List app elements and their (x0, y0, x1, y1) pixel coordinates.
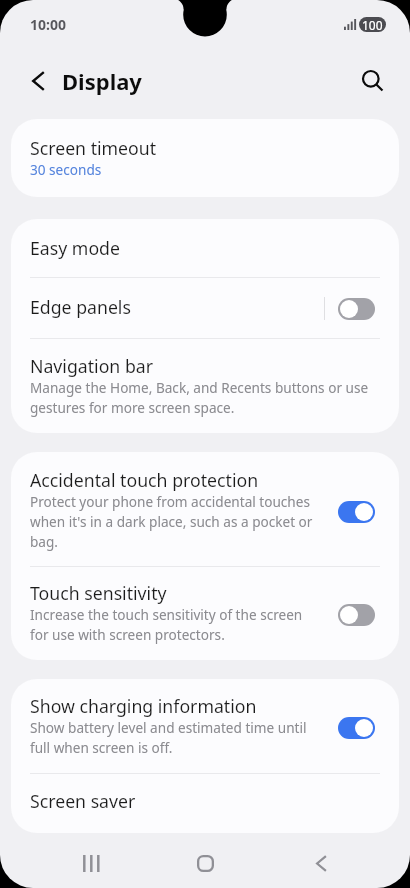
staticText: Screen timeout (30, 139, 157, 160)
staticText: Manage the Home, Back, and Recents butto… (30, 378, 380, 418)
button[interactable]: Accidental touch protection (11, 452, 399, 566)
staticText: Display (62, 66, 142, 96)
staticText: Show battery level and estimated time un… (30, 718, 318, 758)
button[interactable]: Screen timeout (11, 119, 399, 197)
staticText: Protect your phone from accidental touch… (30, 492, 318, 552)
button[interactable]: Navigate up (22, 65, 54, 97)
staticText: Screen saver (30, 792, 136, 813)
button[interactable]: Recent apps (67, 839, 115, 887)
staticText: 100 (362, 17, 383, 32)
staticText: Show charging information (30, 697, 257, 718)
staticText: Navigation bar (30, 357, 153, 378)
button[interactable]: Toggle off (338, 604, 375, 626)
staticText: Touch sensitivity (30, 584, 167, 605)
button[interactable]: Toggle on (338, 501, 375, 523)
button[interactable]: Touch sensitivity (11, 567, 399, 660)
button[interactable]: Back (297, 839, 345, 887)
button[interactable]: Toggle on (338, 717, 375, 739)
button[interactable]: Screen saver (11, 774, 399, 833)
button[interactable]: Toggle off (338, 298, 375, 320)
button[interactable]: Home (181, 839, 229, 887)
staticText: 30 seconds (30, 160, 102, 180)
button[interactable]: Easy mode (11, 219, 399, 277)
button[interactable]: Edge panels (11, 278, 399, 338)
staticText: Easy mode (30, 239, 120, 260)
staticText: Increase the touch sensitivity of the sc… (30, 605, 318, 645)
button[interactable]: Show charging information (11, 679, 399, 773)
staticText: Edge panels (30, 298, 131, 319)
button[interactable]: Navigation bar (11, 339, 399, 433)
staticText: 10:00 (30, 15, 66, 34)
button[interactable]: Search (356, 64, 390, 98)
staticText: Accidental touch protection (30, 471, 259, 492)
